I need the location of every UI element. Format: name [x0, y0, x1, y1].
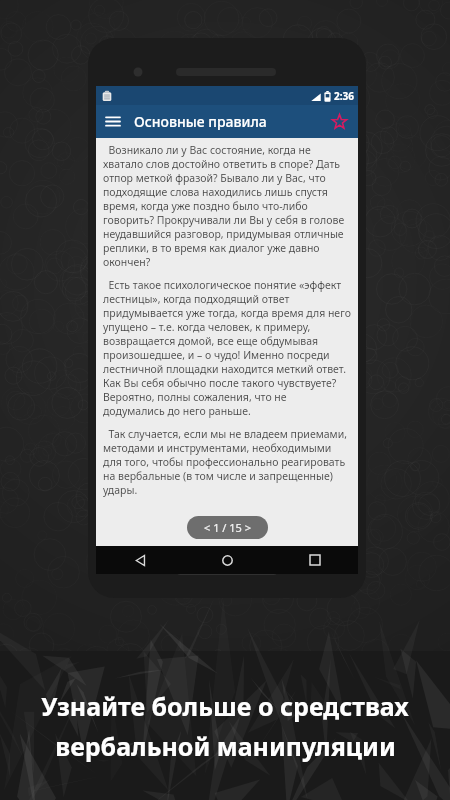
staticText: вербальной манипуляции — [55, 729, 396, 763]
staticText: Узнайте больше о средствах — [41, 689, 409, 723]
button[interactable]: Recent apps — [271, 546, 358, 574]
staticText: Основные правила — [134, 112, 267, 131]
button[interactable]: Home — [184, 546, 271, 574]
button[interactable]: Add to favorites — [323, 105, 356, 138]
staticText: Возникало ли у Вас состояние, когда не х… — [103, 143, 351, 269]
staticText: 2:36 — [334, 89, 354, 103]
button[interactable]: Open navigation menu — [96, 105, 129, 138]
button[interactable]: < 1 / 15 > — [187, 516, 268, 539]
staticText: Есть такое психологическое понятие «эффе… — [103, 278, 351, 418]
staticText: Так случается, если мы не владеем приема… — [103, 427, 351, 497]
button[interactable]: Back — [96, 546, 184, 574]
staticText: < 1 / 15 > — [204, 520, 251, 535]
